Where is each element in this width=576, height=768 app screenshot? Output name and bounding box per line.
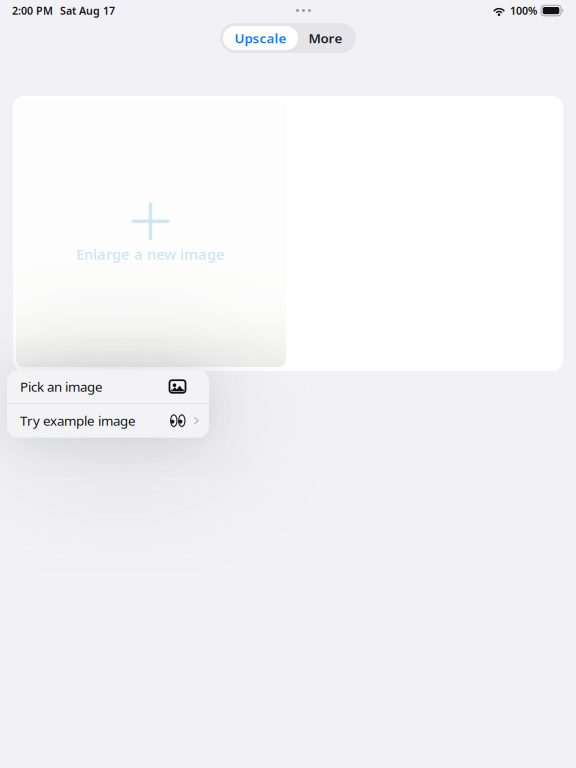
staticText: Enlarge a new image — [76, 244, 225, 264]
button[interactable]: Enlarge a new image — [16, 101, 286, 367]
button[interactable]: Try example image — [7, 404, 209, 438]
button[interactable]: Upscale — [223, 26, 298, 50]
staticText: More — [308, 29, 342, 47]
staticText: Try example image — [20, 412, 136, 429]
staticText: Pick an image — [20, 378, 103, 395]
staticText: 2:00 PM — [12, 3, 53, 18]
button[interactable]: More — [298, 26, 353, 50]
staticText: Upscale — [234, 29, 286, 47]
button[interactable]: Pick an image — [7, 370, 209, 403]
staticText: Sat Aug 17 — [60, 3, 115, 18]
staticText: 100% — [510, 3, 537, 18]
